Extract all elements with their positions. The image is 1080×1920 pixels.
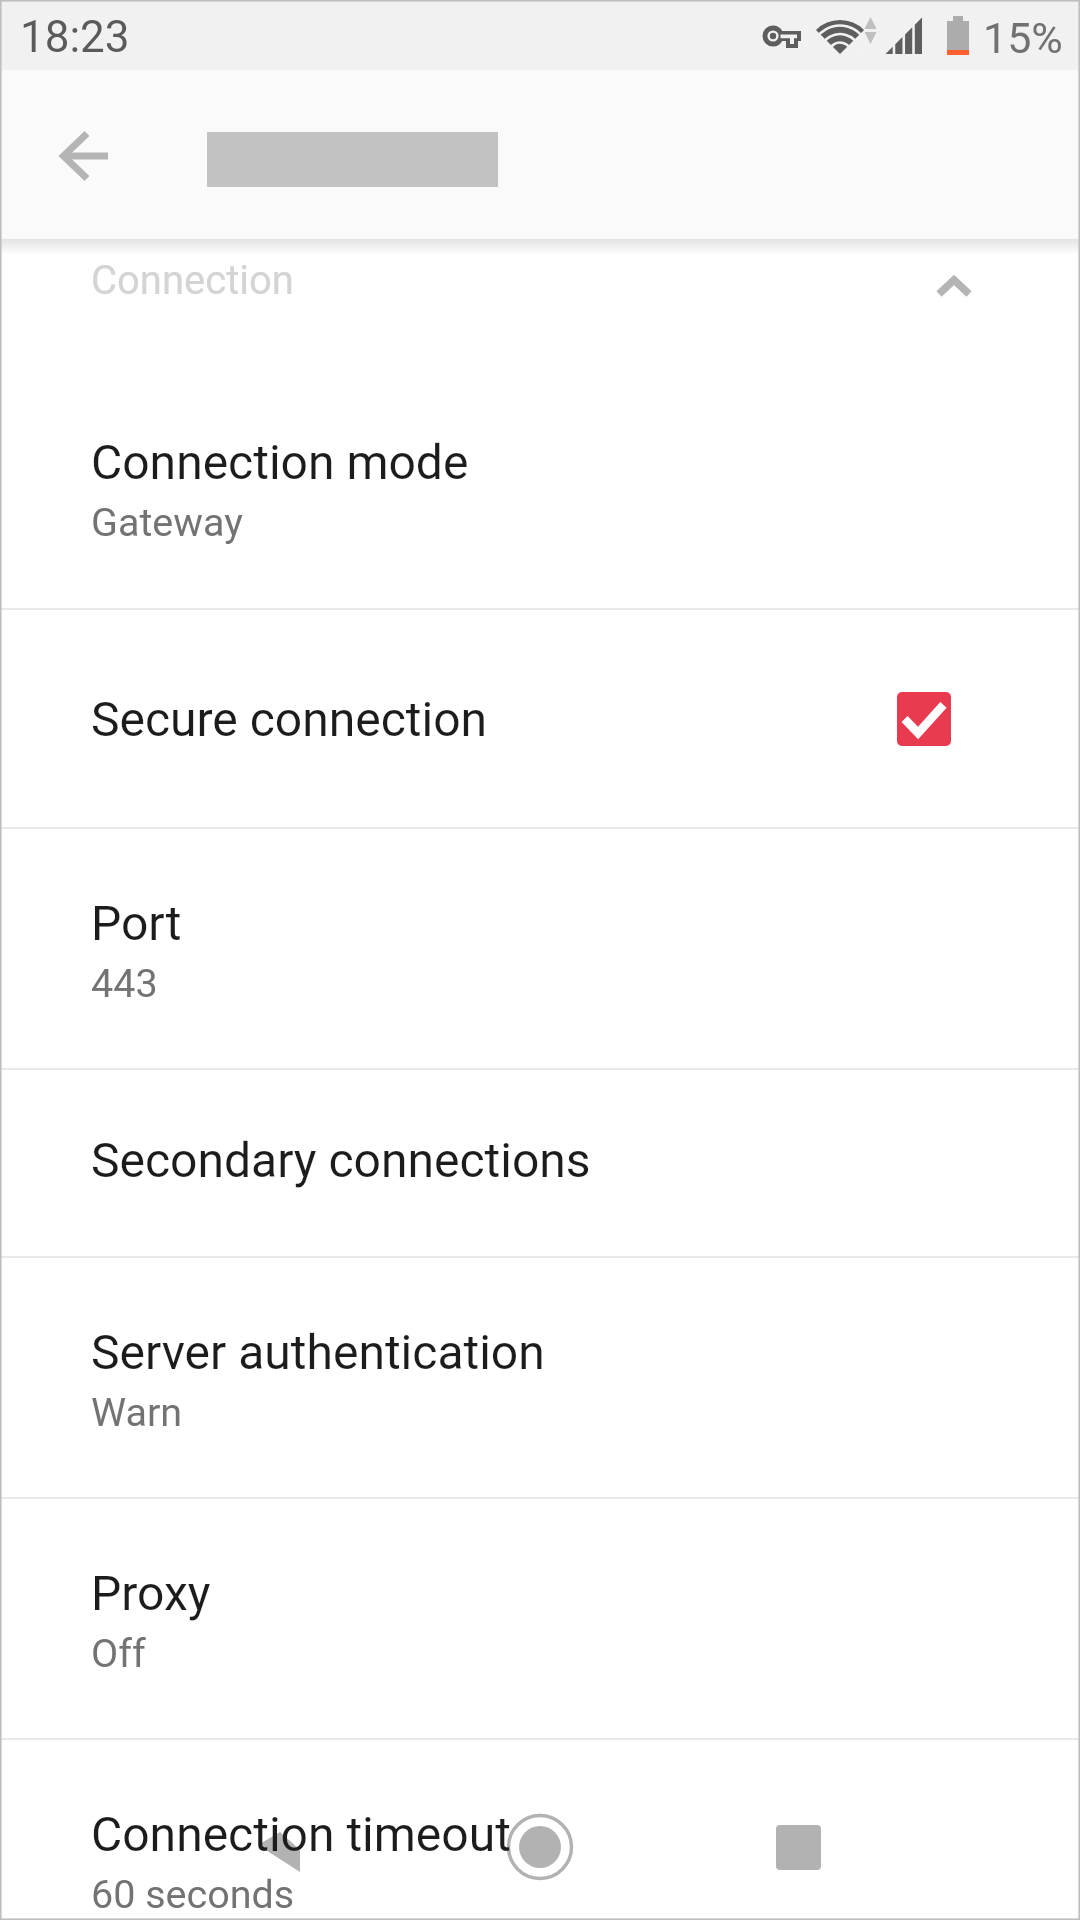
staticText: Connection mode [91,434,469,490]
staticText: Secure connection [91,691,1080,747]
staticText: 443 [91,960,158,1006]
button[interactable]: Navigate up [36,108,132,204]
button[interactable]: Proxy [0,1499,1080,1738]
staticText: Server authentication [91,1324,545,1380]
button[interactable]: Home [506,1813,574,1881]
button[interactable]: Secondary connections [0,1070,1080,1256]
staticText: 60 seconds [91,1871,295,1917]
staticText: Proxy [91,1565,211,1621]
staticText: Warn [91,1389,183,1435]
button[interactable]: Server authentication [0,1258,1080,1497]
button[interactable]: Connection timeout [0,1740,1080,1920]
button[interactable]: Back [250,1820,312,1882]
staticText: Gateway [91,499,243,545]
button[interactable]: Connection [0,239,1080,367]
staticText: Off [91,1630,146,1676]
staticText: Port [91,895,182,951]
staticText: Connection timeout [91,1806,511,1862]
staticText: 18:23 [20,11,130,63]
staticText: Connection [91,257,294,304]
staticText: Secondary connections [91,1132,591,1188]
staticText: 15% [983,13,1063,63]
button[interactable]: Recent apps [776,1825,821,1870]
button[interactable]: Port [0,829,1080,1068]
button[interactable]: Connection mode [0,367,1080,608]
button[interactable]: Secure connection [0,610,1080,827]
